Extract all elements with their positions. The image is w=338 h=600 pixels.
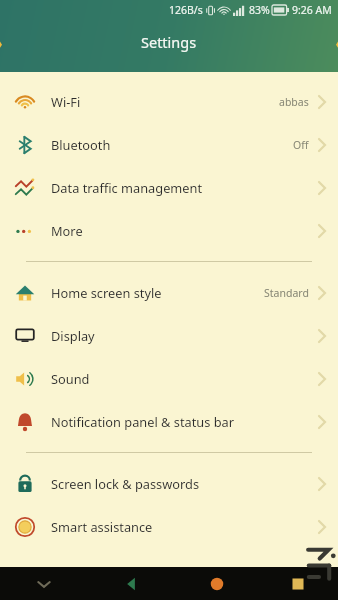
staticText: Wi-Fi [51, 93, 81, 110]
button[interactable]: Back [88, 567, 176, 600]
button[interactable]: Recent apps [257, 567, 338, 600]
button[interactable]: More [0, 209, 338, 252]
button[interactable]: Bluetooth [0, 123, 338, 166]
button[interactable]: Home [176, 567, 257, 600]
staticText: Bluetooth [51, 136, 111, 153]
staticText: 9:26 AM [292, 3, 332, 17]
button[interactable]: Sound [0, 357, 338, 400]
button[interactable]: Smart assistance [0, 505, 338, 548]
button[interactable]: Display [0, 314, 338, 357]
staticText: Off [293, 138, 309, 152]
staticText: 83% [249, 3, 270, 17]
button[interactable]: Wi-Fi [0, 80, 338, 123]
button[interactable]: Data traffic management [0, 166, 338, 209]
staticText: abbas [279, 95, 309, 109]
staticText: Notification panel & status bar [51, 413, 235, 430]
staticText: Sound [51, 370, 90, 387]
staticText: 126B/s [169, 3, 203, 17]
staticText: More [51, 222, 83, 239]
button[interactable]: Home screen style [0, 271, 338, 314]
staticText: Screen lock & passwords [51, 475, 200, 492]
staticText: Home screen style [51, 284, 162, 301]
staticText: Smart assistance [51, 518, 153, 535]
button[interactable]: Screen lock & passwords [0, 462, 338, 505]
staticText: Display [51, 327, 95, 344]
button[interactable]: Hide navigation bar [0, 567, 88, 600]
staticText: Data traffic management [51, 179, 203, 196]
staticText: Settings [141, 32, 197, 52]
button[interactable]: Notification panel & status bar [0, 400, 338, 443]
staticText: Standard [264, 286, 309, 300]
